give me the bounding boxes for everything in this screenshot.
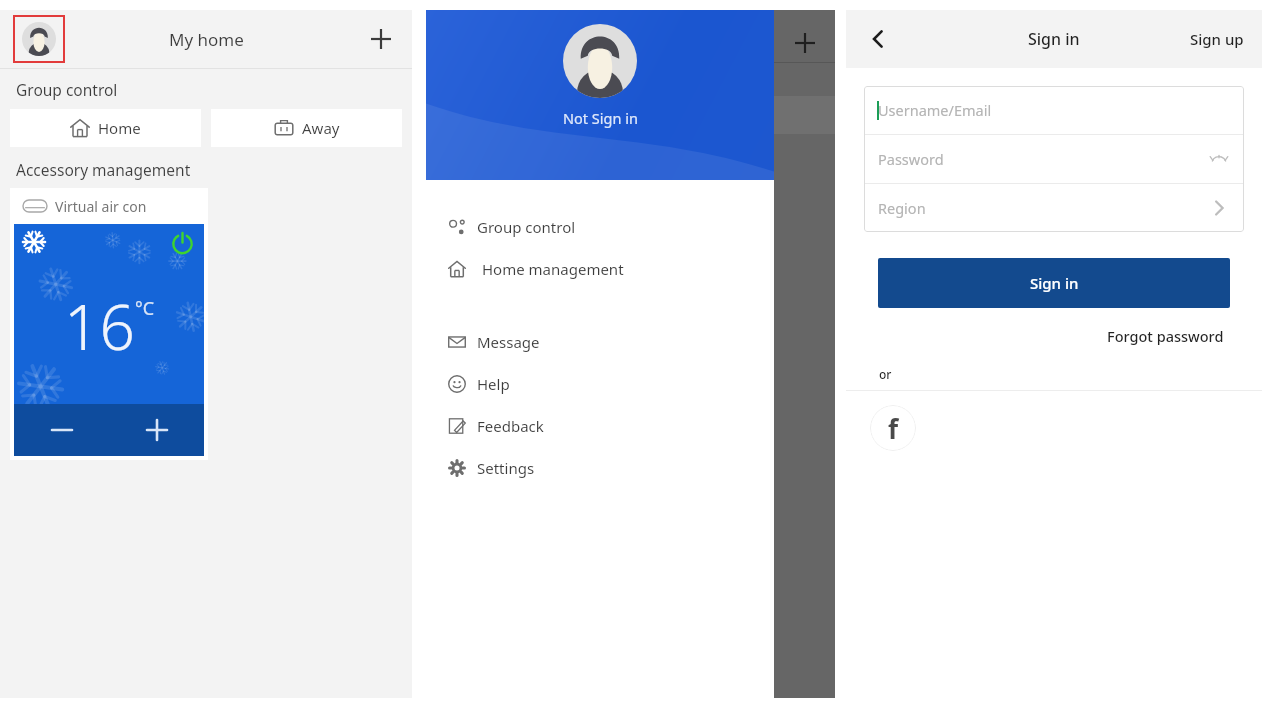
button[interactable]: Message <box>426 321 835 363</box>
button[interactable]: Home management <box>426 248 835 290</box>
staticText: Sign up <box>1190 29 1244 49</box>
staticText: Message <box>477 332 540 352</box>
staticText: 16 <box>64 284 135 368</box>
button[interactable]: Password <box>864 135 1244 183</box>
staticText: Home management <box>482 259 624 279</box>
button[interactable]: Sign up <box>1184 23 1250 55</box>
staticText: °C <box>135 296 155 321</box>
staticText: Help <box>477 374 510 394</box>
button[interactable]: Sign in with Facebook <box>870 405 916 451</box>
staticText: Home <box>98 118 141 138</box>
staticText: Accessory management <box>16 159 191 180</box>
button[interactable]: Profile <box>13 15 65 63</box>
button[interactable]: Forgot password <box>1103 322 1228 350</box>
button[interactable]: Increase temperature <box>109 404 204 456</box>
button[interactable]: Region <box>864 184 1244 232</box>
staticText: Feedback <box>477 416 544 436</box>
staticText: Sign in <box>1030 273 1079 293</box>
button[interactable]: Home <box>10 109 201 147</box>
staticText: Region <box>878 198 926 218</box>
button[interactable]: Add <box>358 16 404 62</box>
staticText: Not Sign in <box>563 108 638 128</box>
staticText: Virtual air con <box>55 197 147 216</box>
staticText: Group control <box>477 217 576 237</box>
button[interactable]: Sign in <box>878 258 1230 308</box>
button[interactable]: Feedback <box>426 405 835 447</box>
button[interactable]: Settings <box>426 447 835 489</box>
button[interactable]: Show password <box>1206 146 1232 172</box>
button[interactable]: Not Sign in <box>563 108 638 128</box>
staticText: or <box>879 366 892 382</box>
button[interactable]: Add <box>774 10 835 698</box>
staticText: Sign in <box>1028 28 1080 50</box>
other: Add <box>788 26 822 60</box>
button[interactable]: Back <box>856 17 900 61</box>
staticText: Group control <box>16 79 118 100</box>
button[interactable]: Username/Email <box>864 86 1244 134</box>
button[interactable]: Help <box>426 363 835 405</box>
button[interactable]: Away <box>211 109 402 147</box>
staticText: Forgot password <box>1107 326 1224 346</box>
button[interactable]: Virtual air con <box>10 188 208 460</box>
staticText: My home <box>169 28 244 51</box>
button[interactable]: Decrease temperature <box>14 404 109 456</box>
staticText: f <box>888 411 899 446</box>
staticText: Username/Email <box>878 100 992 120</box>
staticText: Settings <box>477 458 535 478</box>
staticText: Password <box>878 149 944 169</box>
button[interactable]: Power <box>168 229 196 257</box>
staticText: Away <box>302 118 340 138</box>
button[interactable]: Group control <box>426 206 835 248</box>
